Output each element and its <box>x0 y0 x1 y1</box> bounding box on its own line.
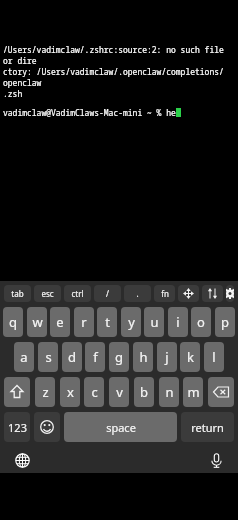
button[interactable]: d <box>62 342 82 372</box>
staticText: 123 <box>8 420 27 435</box>
staticText: t <box>105 313 110 331</box>
staticText: g <box>115 348 123 366</box>
staticText: w <box>32 313 43 331</box>
staticText: m <box>187 383 200 401</box>
button[interactable]: p <box>215 307 235 337</box>
staticText: /Users/vadimclaw/.zshrc:source:2: no suc… <box>3 44 238 66</box>
button[interactable]: f <box>85 342 105 372</box>
button[interactable]: Voice input <box>203 448 229 473</box>
staticText: n <box>165 383 174 401</box>
button[interactable]: Scroll <box>202 285 223 302</box>
button[interactable]: Move cursor <box>178 285 199 302</box>
staticText: a <box>20 348 28 366</box>
button[interactable]: q <box>3 307 23 337</box>
button[interactable]: t <box>97 307 117 337</box>
staticText: b <box>140 383 148 401</box>
button[interactable]: c <box>84 377 104 407</box>
staticText: l <box>212 348 216 366</box>
staticText: space <box>106 420 136 435</box>
staticText: k <box>187 348 194 366</box>
button[interactable]: 123 <box>4 412 30 442</box>
button[interactable]: b <box>134 377 154 407</box>
staticText: .zsh <box>3 88 23 99</box>
staticText: y <box>128 313 135 331</box>
button[interactable]: k <box>180 342 200 372</box>
staticText: z <box>42 383 49 401</box>
button[interactable]: m <box>183 377 203 407</box>
button[interactable]: l <box>204 342 224 372</box>
staticText: q <box>9 313 17 331</box>
staticText: fn <box>161 288 169 299</box>
button[interactable]: Shift <box>4 377 30 407</box>
button[interactable]: . <box>124 285 151 302</box>
staticText: o <box>197 313 205 331</box>
button[interactable]: tab <box>4 285 31 302</box>
button[interactable]: space <box>64 412 177 442</box>
staticText: return <box>191 420 224 435</box>
button[interactable]: o <box>191 307 211 337</box>
staticText: v <box>116 383 123 401</box>
button[interactable]: a <box>14 342 34 372</box>
staticText: s <box>45 348 52 366</box>
button[interactable]: n <box>159 377 179 407</box>
staticText: c <box>91 383 98 401</box>
staticText: r <box>81 313 87 331</box>
button[interactable]: ctrl <box>64 285 91 302</box>
button[interactable]: Emoji <box>34 412 60 442</box>
button[interactable]: return <box>181 412 234 442</box>
button[interactable]: j <box>157 342 177 372</box>
button[interactable]: Settings <box>226 285 234 302</box>
button[interactable]: w <box>27 307 47 337</box>
button[interactable]: y <box>121 307 141 337</box>
button[interactable]: g <box>109 342 129 372</box>
button[interactable]: fn <box>154 285 175 302</box>
staticText: f <box>93 348 98 366</box>
staticText: vadimclaw@VadimClaws-Mac-mini ~ % he <box>3 107 176 118</box>
button[interactable]: / <box>94 285 121 302</box>
button[interactable]: Backspace <box>208 377 234 407</box>
staticText: e <box>56 313 64 331</box>
button[interactable]: i <box>168 307 188 337</box>
button[interactable]: Change keyboard <box>9 448 35 473</box>
button[interactable]: h <box>133 342 153 372</box>
staticText: ctory: /Users/vadimclaw/.openclaw/comple… <box>3 66 238 88</box>
staticText: x <box>67 383 74 401</box>
button[interactable]: x <box>60 377 80 407</box>
button[interactable]: v <box>109 377 129 407</box>
button[interactable]: s <box>38 342 58 372</box>
staticText: u <box>150 313 159 331</box>
button[interactable]: esc <box>34 285 61 302</box>
staticText: j <box>165 348 169 366</box>
staticText: esc <box>41 288 54 299</box>
staticText: tab <box>11 288 24 299</box>
button[interactable]: z <box>35 377 55 407</box>
staticText: p <box>221 313 229 331</box>
staticText: . <box>136 288 139 299</box>
staticText: ctrl <box>71 288 84 299</box>
button[interactable]: u <box>144 307 164 337</box>
button[interactable]: r <box>74 307 94 337</box>
staticText: i <box>176 313 180 331</box>
staticText: d <box>68 348 76 366</box>
staticText: h <box>139 348 148 366</box>
staticText: / <box>106 288 109 299</box>
button[interactable]: e <box>50 307 70 337</box>
